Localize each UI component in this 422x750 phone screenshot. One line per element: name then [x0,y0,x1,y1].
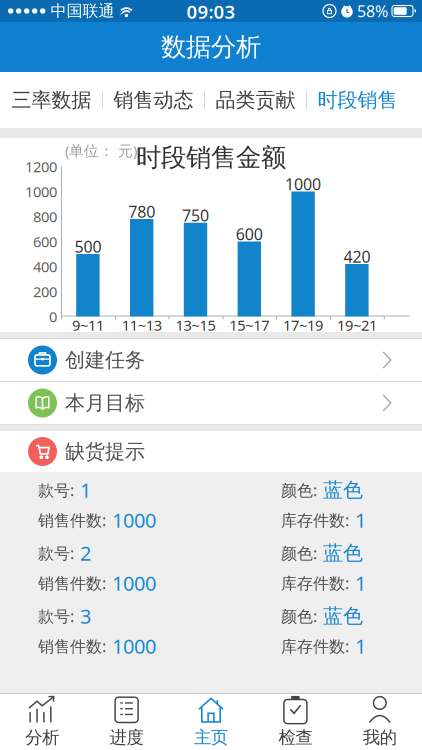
button[interactable]: 品类贡献 [205,72,306,128]
staticText: 销售件数: [38,509,106,531]
staticText: 780 [128,201,155,222]
staticText: 750 [182,205,209,226]
staticText: 时段销售金额 [136,142,286,173]
staticText: 1 [355,507,366,533]
staticText: 11~13 [122,315,162,335]
staticText: 600 [236,223,263,245]
staticText: 库存件数: [281,635,349,657]
staticText: 600 [33,232,57,251]
staticText: 09:03 [186,0,235,24]
staticText: 蓝色 [323,478,363,502]
staticText: 蓝色 [323,604,363,628]
staticText: 数据分析 [161,31,261,62]
button[interactable]: 分析 [0,694,84,750]
staticText: 200 [33,282,57,301]
staticText: 分析 [25,727,59,748]
staticText: 库存件数: [281,509,349,531]
staticText: 颜色: [281,479,317,501]
staticText: 58% [357,0,388,22]
staticText: 500 [74,236,101,257]
staticText: 15~17 [229,315,269,335]
staticText: 3 [80,603,91,629]
button[interactable]: 三率数据 [1,72,102,128]
staticText: 三率数据 [11,88,91,112]
staticText: 本月目标 [65,391,145,415]
staticText: 蓝色 [323,541,363,565]
staticText: 420 [343,246,370,267]
staticText: 0 [49,307,57,326]
staticText: 1000 [112,507,156,533]
button[interactable]: 我的 [338,694,422,750]
staticText: 颜色: [281,605,317,627]
staticText: 2 [80,540,91,566]
staticText: 1 [355,570,366,596]
staticText: 进度 [110,727,144,748]
staticText: 我的 [363,727,397,748]
button[interactable]: 进度 [84,694,169,750]
button[interactable]: 本月目标 [0,382,422,424]
button[interactable]: 主页 [169,694,253,750]
staticText: 款号: [38,605,74,627]
button[interactable]: 检查 [253,694,338,750]
staticText: 17~19 [283,315,323,335]
staticText: 400 [33,257,57,276]
staticText: (单位： 元) [65,141,137,160]
staticText: 1000 [112,570,156,596]
staticText: 销售动态 [113,88,193,112]
button[interactable]: 销售动态 [103,72,204,128]
staticText: 主页 [194,727,228,748]
staticText: 颜色: [281,542,317,564]
button[interactable]: 创建任务 [0,339,422,381]
staticText: 检查 [278,727,312,748]
staticText: 款号: [38,542,74,564]
staticText: 1 [80,477,91,503]
staticText: 1000 [25,182,57,201]
staticText: 1 [355,633,366,659]
staticText: 13~15 [175,315,215,335]
staticText: 时段销售 [317,88,397,112]
staticText: 品类贡献 [215,88,295,112]
button[interactable]: 缺货提示 [0,431,422,472]
staticText: 1200 [25,157,57,176]
staticText: 800 [33,207,57,226]
staticText: 9~11 [72,315,104,335]
staticText: 缺货提示 [65,439,145,464]
staticText: 款号: [38,479,74,501]
button[interactable]: 时段销售 [307,72,408,128]
staticText: 19~21 [337,315,377,335]
staticText: 库存件数: [281,572,349,594]
staticText: 中国联通 [50,1,114,21]
staticText: 销售件数: [38,572,106,594]
staticText: 创建任务 [65,348,145,372]
staticText: 1000 [112,633,156,659]
staticText: 销售件数: [38,635,106,657]
staticText: 1000 [285,173,321,195]
